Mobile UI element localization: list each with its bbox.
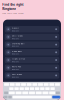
button[interactable]: Soft Piano bbox=[5, 72, 59, 79]
button[interactable]: Night Drive bbox=[5, 57, 59, 63]
staticText: Chill Vibes bbox=[12, 34, 23, 37]
staticText: Morning Bell bbox=[12, 42, 25, 45]
staticText: that suits your mood bbox=[2, 12, 23, 15]
staticText: Ringtone bbox=[12, 45, 19, 47]
staticText: Ringtone bbox=[2, 7, 16, 11]
button[interactable]: Chill Vibes bbox=[5, 34, 59, 40]
staticText: Soft Piano bbox=[12, 73, 22, 76]
staticText: Ringtone bbox=[12, 68, 19, 70]
button[interactable]: Morning Bell bbox=[5, 41, 59, 48]
staticText: Retro Pop bbox=[12, 65, 21, 68]
button[interactable]: Deep Bass bbox=[5, 49, 59, 56]
staticText: Deep Bass bbox=[12, 50, 22, 52]
staticText: Ringtone bbox=[12, 60, 19, 63]
staticText: Ringtone bbox=[12, 37, 19, 40]
staticText: Classic bbox=[12, 26, 19, 29]
staticText: Find the right bbox=[2, 2, 23, 7]
staticText: Ringtone bbox=[12, 76, 19, 78]
staticText: Ringtone bbox=[12, 53, 19, 55]
button[interactable]: Retro Pop bbox=[5, 64, 59, 71]
staticText: Night Drive bbox=[12, 57, 25, 60]
button[interactable]: Classic bbox=[5, 26, 59, 32]
staticText: Ringtone bbox=[12, 30, 19, 32]
